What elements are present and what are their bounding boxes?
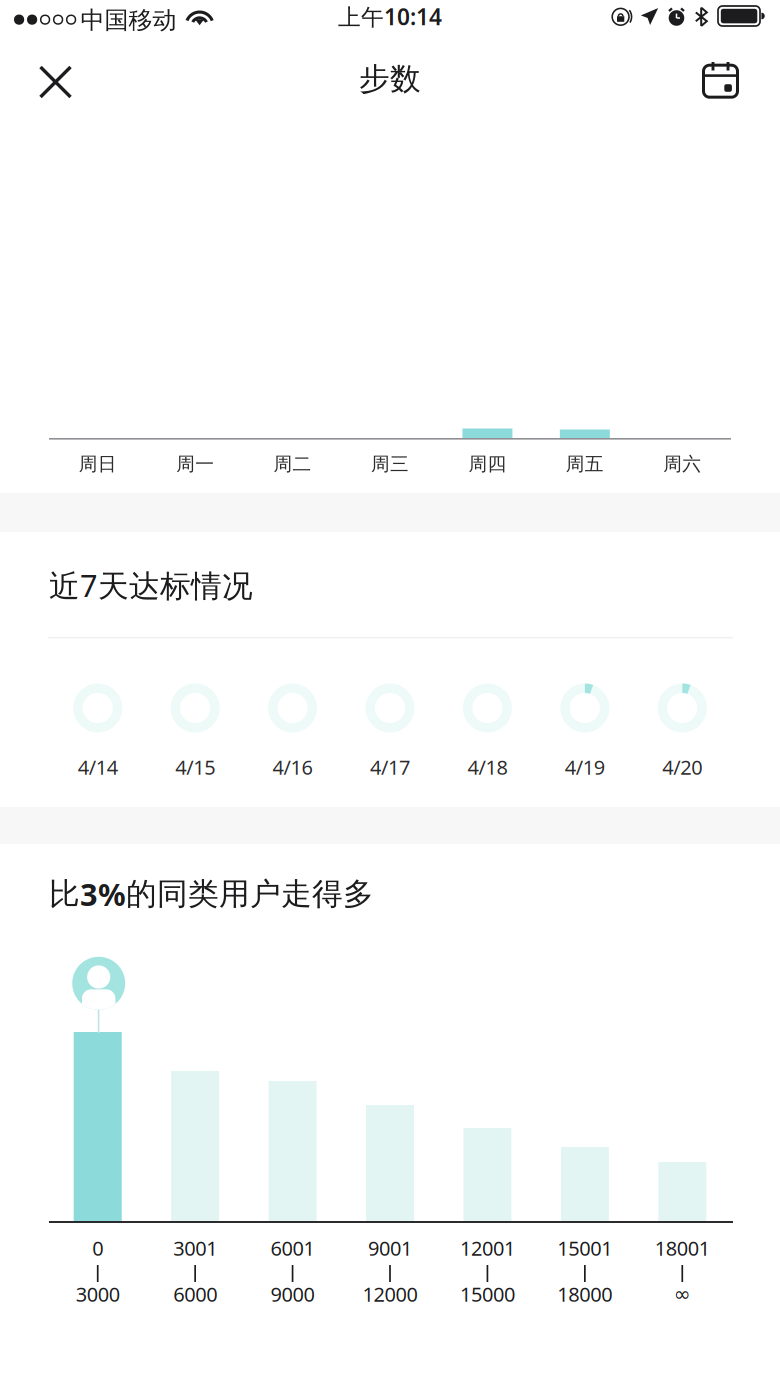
staticText: 近7天达标情况 (49, 565, 253, 605)
staticText: 15000 (460, 1281, 515, 1307)
staticText: 3001 (173, 1235, 217, 1261)
staticText: 周三 (371, 452, 409, 475)
staticText: 周一 (176, 452, 214, 475)
staticText: 4/19 (565, 754, 605, 780)
staticText: 12000 (362, 1281, 417, 1307)
staticText: 4/18 (467, 754, 507, 780)
staticText: 中国移动 (81, 5, 177, 35)
staticText: 18000 (557, 1281, 612, 1307)
staticText: 4/17 (370, 754, 410, 780)
staticText: 9001 (368, 1235, 412, 1261)
staticText: 3% (80, 874, 126, 914)
staticText: 上午10:14 (338, 1, 442, 31)
staticText: 步数 (359, 60, 421, 98)
staticText: 18001 (655, 1235, 710, 1261)
staticText: 周二 (274, 452, 312, 475)
staticText: 4/15 (175, 754, 215, 780)
staticText: 6001 (271, 1235, 315, 1261)
staticText: 4/14 (78, 754, 118, 780)
staticText: ∞ (674, 1283, 691, 1305)
staticText: 6000 (173, 1281, 217, 1307)
staticText: 0 (92, 1235, 103, 1261)
button[interactable]: 日历 (681, 40, 765, 118)
staticText: 3000 (76, 1281, 120, 1307)
button[interactable]: 关闭 (14, 40, 98, 118)
staticText: 4/16 (273, 754, 313, 780)
staticText: 12001 (460, 1235, 515, 1261)
staticText: 的同类用户走得多 (126, 875, 374, 913)
staticText: 15001 (557, 1235, 612, 1261)
staticText: 周日 (79, 452, 117, 475)
staticText: 周四 (468, 452, 506, 475)
staticText: 比 (49, 875, 80, 913)
staticText: 周五 (566, 452, 604, 475)
staticText: 周六 (663, 452, 701, 475)
staticText: 9000 (271, 1281, 315, 1307)
staticText: 4/20 (662, 754, 702, 780)
